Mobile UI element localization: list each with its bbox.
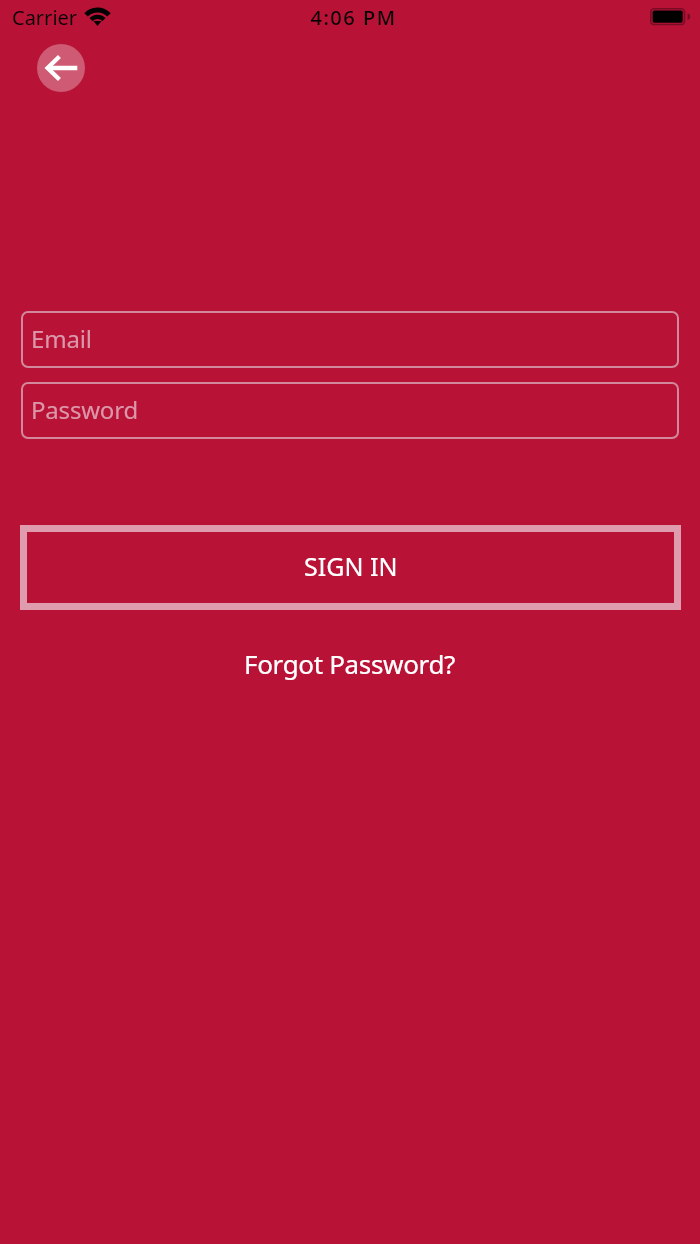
staticText: Email (31, 322, 92, 355)
staticText: Password (31, 393, 138, 426)
staticText: Forgot Password? (244, 646, 456, 681)
staticText: 4:06 PM (310, 4, 397, 31)
button[interactable]: Email (21, 311, 679, 368)
button[interactable]: Forgot Password? (234, 640, 466, 687)
button[interactable]: Password (21, 382, 679, 439)
button[interactable]: SIGN IN (20, 525, 681, 610)
staticText: Carrier (12, 4, 78, 31)
staticText: SIGN IN (304, 549, 398, 583)
button[interactable]: Back (37, 44, 85, 92)
